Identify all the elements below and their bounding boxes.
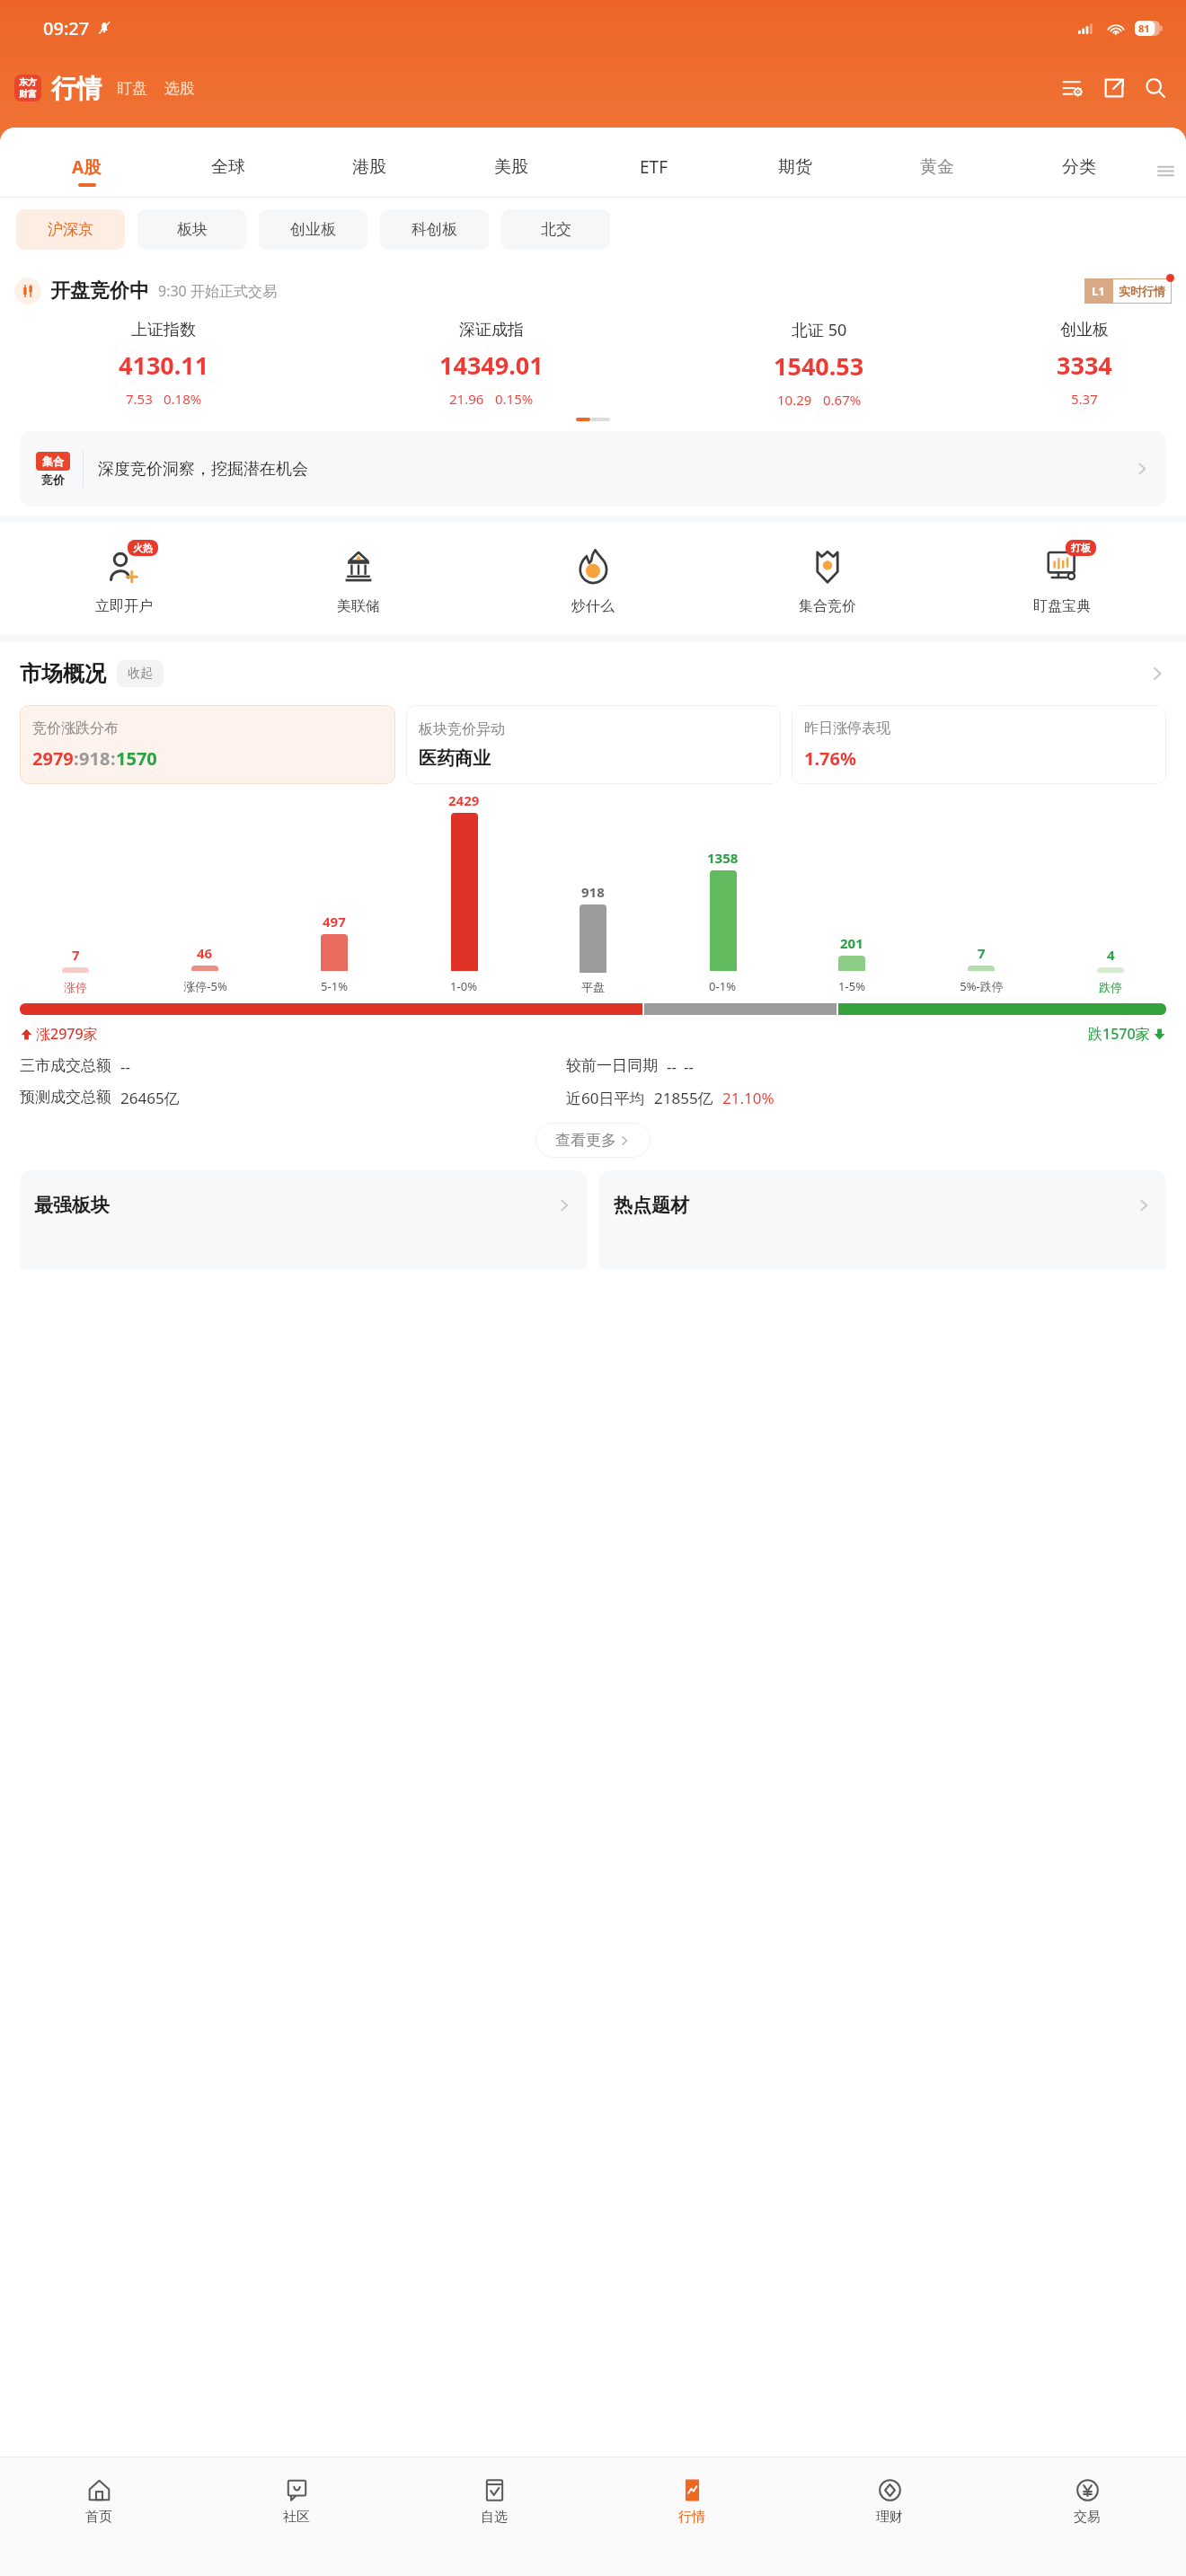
button[interactable]: 集合 (20, 431, 1166, 507)
staticText: 跌1570家 (1088, 1024, 1150, 1044)
staticText: 板块竞价异动 (419, 720, 505, 738)
staticText: : (74, 746, 79, 771)
button[interactable]: 理财 (791, 2457, 988, 2544)
staticText: 上证指数 (131, 320, 196, 340)
staticText: 深度竞价洞察，挖掘潜在机会 (98, 459, 308, 480)
button[interactable]: 北证 50 (655, 314, 983, 413)
staticText: 7 (978, 944, 986, 962)
staticText: 行情 (51, 73, 102, 104)
button[interactable]: 火热 (7, 523, 241, 635)
button[interactable]: 昨日涨停表现 (792, 705, 1166, 784)
staticText: 收起 (128, 666, 153, 682)
button[interactable]: 创业板 (259, 209, 367, 250)
staticText: 918 (581, 883, 605, 901)
staticText: 医药商业 (419, 747, 491, 770)
button[interactable]: 黄金 (866, 144, 1008, 198)
staticText: 预测成交总额 (20, 1088, 111, 1107)
button[interactable]: 美股 (440, 144, 582, 198)
button[interactable]: 选股 (162, 74, 198, 103)
staticText: 918 (79, 746, 111, 771)
staticText: 三市成交总额 (20, 1056, 111, 1075)
button[interactable]: 北交 (501, 209, 610, 250)
staticText: 21.10% (722, 1088, 774, 1108)
staticText: 涨停-5% (183, 978, 227, 994)
button[interactable]: 港股 (298, 144, 440, 198)
staticText: 炒什么 (571, 597, 615, 615)
button[interactable]: 首页 (0, 2457, 198, 2544)
staticText: 1-5% (838, 978, 865, 994)
staticText: 行情 (678, 2509, 705, 2526)
staticText: 5.37 (1071, 390, 1098, 408)
staticText: 板块 (177, 220, 208, 239)
staticText: 7.53 (126, 390, 153, 408)
staticText: 交易 (1074, 2509, 1101, 2526)
staticText: 期货 (778, 156, 812, 178)
button[interactable]: 分类 (1008, 144, 1150, 198)
button[interactable]: 上证指数 (0, 314, 327, 413)
button[interactable]: 科创板 (380, 209, 489, 250)
staticText: 46 (197, 944, 213, 962)
staticText: 4130.11 (119, 348, 209, 382)
staticText: 497 (323, 913, 346, 931)
button[interactable]: 期货 (724, 144, 866, 198)
staticText: 分类 (1062, 156, 1096, 178)
button[interactable]: Share (1098, 72, 1130, 104)
staticText: 5-1% (321, 978, 348, 994)
staticText: 5%-跌停 (960, 978, 1004, 994)
staticText: 竞价涨跌分布 (32, 719, 119, 737)
staticText: 1358 (707, 849, 739, 867)
staticText: 1540.53 (774, 349, 864, 383)
button[interactable]: 热点题材 (599, 1170, 1166, 1269)
button[interactable]: Search (1139, 72, 1172, 104)
button[interactable]: 沪深京 (16, 209, 125, 250)
button[interactable]: 竞价涨跌分布 (20, 705, 395, 784)
staticText: 创业板 (290, 220, 336, 239)
button[interactable]: 炒什么 (475, 523, 710, 635)
button[interactable]: 行情 (593, 2457, 791, 2544)
button[interactable]: 深证成指 (327, 314, 655, 413)
staticText: 较前一日同期 (566, 1056, 658, 1075)
staticText: 北证 50 (792, 319, 847, 341)
staticText: 涨停 (64, 980, 87, 994)
staticText: 最强板块 (34, 1194, 110, 1217)
staticText: 科创板 (412, 220, 457, 239)
button[interactable]: 最强板块 (20, 1170, 587, 1269)
button[interactable]: 板块 (137, 209, 246, 250)
button[interactable]: 市场概况 (20, 642, 1166, 705)
staticText: 3334 (1057, 348, 1112, 382)
staticText: 盯盘 (117, 79, 147, 98)
button[interactable]: More categories (1150, 144, 1181, 198)
staticText: 创业板 (1060, 320, 1109, 340)
staticText: 2979 (32, 746, 74, 771)
staticText: -- (667, 1056, 677, 1077)
staticText: 集合竞价 (799, 597, 856, 615)
button[interactable]: 盯盘 (114, 74, 150, 103)
button[interactable]: A股 (16, 144, 157, 198)
staticText: 实时行情 (1119, 284, 1165, 298)
button[interactable]: 打板 (944, 523, 1179, 635)
button[interactable]: 全球 (157, 144, 298, 198)
button[interactable]: 查看更多 (535, 1123, 651, 1158)
button[interactable]: 自选 (395, 2457, 593, 2544)
staticText: 美联储 (337, 597, 380, 615)
staticText: 火热 (133, 542, 153, 554)
staticText: 北交 (541, 220, 571, 239)
staticText: 选股 (164, 79, 195, 98)
button[interactable]: 交易 (988, 2457, 1186, 2544)
staticText: 26465亿 (120, 1088, 180, 1108)
staticText: 1570 (116, 746, 157, 771)
staticText: 0.15% (495, 390, 534, 408)
staticText: 201 (840, 934, 863, 952)
button[interactable]: L1 (1084, 278, 1172, 304)
button[interactable]: ETF (582, 144, 724, 198)
button[interactable]: 集合竞价 (710, 523, 944, 635)
staticText: 21855亿 (654, 1088, 713, 1108)
staticText: 社区 (283, 2509, 310, 2526)
button[interactable]: 创业板 (983, 314, 1186, 413)
button[interactable]: 社区 (198, 2457, 395, 2544)
button[interactable]: Sort settings (1057, 72, 1089, 104)
staticText: 理财 (876, 2509, 903, 2526)
button[interactable]: 板块竞价异动 (406, 705, 781, 784)
button[interactable]: 美联储 (241, 523, 475, 635)
staticText: 0.18% (164, 390, 202, 408)
